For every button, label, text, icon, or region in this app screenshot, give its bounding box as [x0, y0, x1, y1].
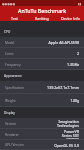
- button[interactable]: Device Info: [56, 15, 84, 21]
- staticText: Ranking: [35, 16, 49, 21]
- button[interactable]: Specification: [0, 81, 84, 94]
- button[interactable]: Cores: [0, 48, 84, 59]
- button[interactable]: Version: [0, 118, 84, 129]
- button[interactable]: Renderer: [0, 129, 84, 140]
- button[interactable]: GPU Version: [0, 140, 84, 150]
- staticText: 140g: [70, 98, 79, 103]
- staticText: GPU Version: [5, 143, 24, 147]
- staticText: 139.2x67.1x7.1mm: [47, 85, 79, 90]
- staticText: Renderer: [5, 133, 19, 137]
- button[interactable]: Test: [0, 15, 28, 21]
- staticText: Device Info: [61, 16, 80, 21]
- staticText: 2: [76, 51, 79, 56]
- staticText: ▮▮: [78, 2, 82, 5]
- staticText: Specification: [5, 86, 24, 90]
- staticText: OpenGL ES 3.0: [54, 143, 79, 148]
- button[interactable]: Weight: [0, 94, 84, 107]
- button[interactable]: Ranking: [28, 15, 56, 21]
- staticText: Frequency: [5, 63, 21, 67]
- staticText: Apple A6 APL5598: [48, 40, 79, 45]
- staticText: Version: [5, 122, 17, 126]
- staticText: Cores: [5, 52, 14, 56]
- staticText: Imagination Technologies: [55, 119, 79, 128]
- staticText: Display: [4, 111, 15, 115]
- staticText: 1.3GHz: [66, 62, 79, 67]
- staticText: PowerVR Series 5XT GT7080: [55, 129, 79, 140]
- button[interactable]: Model: [0, 37, 84, 48]
- staticText: CPU: [4, 30, 11, 34]
- staticText: Weight: [5, 99, 16, 103]
- staticText: Model: [5, 41, 15, 45]
- staticText: AnTuTu Benchmark: [18, 7, 67, 14]
- staticText: Appearance: [4, 74, 22, 78]
- staticText: ●●●●●: [2, 2, 16, 5]
- button[interactable]: Frequency: [0, 59, 84, 70]
- staticText: Test: [11, 16, 18, 21]
